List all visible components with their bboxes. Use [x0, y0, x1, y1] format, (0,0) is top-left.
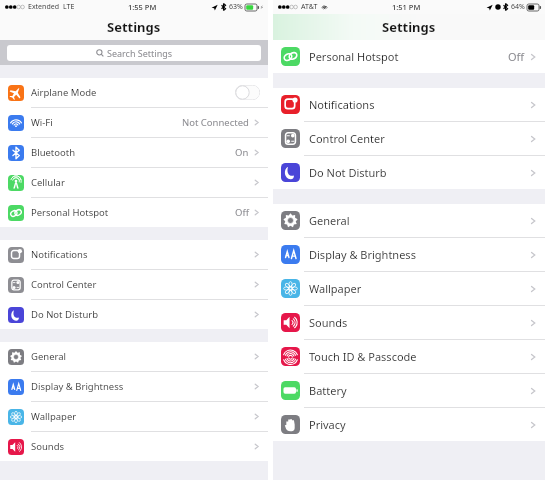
staticText: Do Not Disturb: [309, 165, 387, 180]
staticText: Wallpaper: [309, 281, 362, 296]
button[interactable]: General: [273, 204, 545, 237]
button[interactable]: Sounds: [273, 306, 545, 339]
staticText: Cellular: [31, 176, 65, 189]
button[interactable]: Bluetooth: [0, 138, 268, 167]
button[interactable]: Control Center: [273, 122, 545, 155]
button[interactable]: Personal Hotspot: [0, 198, 268, 227]
button[interactable]: Display & Brightness: [0, 372, 268, 401]
staticText: Wallpaper: [31, 410, 77, 423]
staticText: Sounds: [309, 315, 348, 330]
button[interactable]: Do Not Disturb: [0, 300, 268, 329]
button[interactable]: Sounds: [0, 432, 268, 461]
staticText: 63%: [229, 2, 243, 12]
staticText: ⚡: [260, 4, 264, 10]
staticText: 1:55 PM: [128, 2, 157, 12]
staticText: Bluetooth: [31, 146, 76, 159]
staticText: Privacy: [309, 417, 346, 432]
staticText: Airplane Mode: [31, 86, 97, 99]
button[interactable]: Wallpaper: [0, 402, 268, 431]
button[interactable]: Notifications: [273, 88, 545, 121]
staticText: Personal Hotspot: [31, 206, 109, 219]
button[interactable]: Notifications: [0, 240, 268, 269]
staticText: Off: [235, 206, 249, 219]
other: Airplane Mode toggle: [235, 85, 260, 100]
button[interactable]: Privacy: [273, 408, 545, 441]
button[interactable]: Search Settings: [7, 45, 261, 61]
button[interactable]: Control Center: [0, 270, 268, 299]
staticText: Control Center: [309, 131, 385, 146]
button[interactable]: Battery: [273, 374, 545, 407]
staticText: Search Settings: [107, 47, 173, 59]
staticText: Settings: [107, 18, 161, 36]
staticText: Personal Hotspot: [309, 49, 399, 64]
staticText: 1:51 PM: [392, 2, 421, 12]
staticText: Display & Brightness: [31, 380, 124, 393]
staticText: General: [309, 213, 350, 228]
staticText: Control Center: [31, 278, 97, 291]
staticText: Off: [508, 49, 525, 64]
staticText: On: [235, 146, 249, 159]
staticText: Settings: [382, 18, 436, 36]
staticText: Notifications: [31, 248, 88, 261]
staticText: General: [31, 350, 67, 363]
button[interactable]: Wi-Fi: [0, 108, 268, 137]
button[interactable]: Wallpaper: [273, 272, 545, 305]
button[interactable]: Personal Hotspot: [273, 40, 545, 73]
staticText: Display & Brightness: [309, 247, 416, 262]
button[interactable]: Cellular: [0, 168, 268, 197]
button[interactable]: Airplane Mode: [0, 78, 268, 107]
staticText: Do Not Disturb: [31, 308, 99, 321]
staticText: 64%: [511, 2, 525, 12]
staticText: Touch ID & Passcode: [309, 349, 417, 364]
button[interactable]: Display & Brightness: [273, 238, 545, 271]
staticText: Extended: [28, 2, 59, 12]
button[interactable]: Touch ID & Passcode: [273, 340, 545, 373]
staticText: Sounds: [31, 440, 65, 453]
staticText: Wi-Fi: [31, 116, 53, 129]
staticText: AT&T: [301, 2, 318, 12]
staticText: Battery: [309, 383, 347, 398]
button[interactable]: Do Not Disturb: [273, 156, 545, 189]
button[interactable]: General: [0, 342, 268, 371]
staticText: LTE: [63, 2, 75, 12]
staticText: Not Connected: [182, 116, 249, 129]
staticText: Notifications: [309, 97, 375, 112]
